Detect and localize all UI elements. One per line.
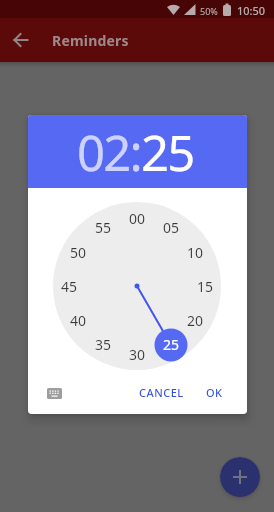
staticText: 30 bbox=[129, 345, 146, 363]
staticText: Reminders bbox=[52, 31, 129, 50]
staticText: 55 bbox=[95, 218, 112, 236]
staticText: 45 bbox=[61, 277, 78, 295]
button[interactable]: OK bbox=[198, 382, 230, 402]
staticText: 25 bbox=[163, 335, 180, 353]
staticText: OK bbox=[206, 385, 223, 400]
staticText: 05 bbox=[163, 218, 180, 236]
staticText: 15 bbox=[197, 277, 214, 295]
staticText: 25 bbox=[141, 119, 194, 186]
staticText: 02: bbox=[77, 119, 141, 186]
button[interactable]: CANCEL bbox=[135, 382, 188, 402]
button[interactable] bbox=[220, 457, 260, 497]
staticText: 40 bbox=[70, 311, 87, 329]
staticText: 50 bbox=[70, 243, 87, 261]
staticText: 00 bbox=[129, 209, 146, 227]
staticText: 35 bbox=[95, 335, 112, 353]
staticText: 10:50 bbox=[237, 3, 266, 18]
button[interactable] bbox=[14, 33, 28, 47]
button[interactable] bbox=[47, 388, 62, 399]
staticText: 20 bbox=[187, 311, 204, 329]
staticText: CANCEL bbox=[139, 385, 184, 400]
staticText: 10 bbox=[187, 243, 204, 261]
staticText: 50% bbox=[200, 5, 218, 17]
